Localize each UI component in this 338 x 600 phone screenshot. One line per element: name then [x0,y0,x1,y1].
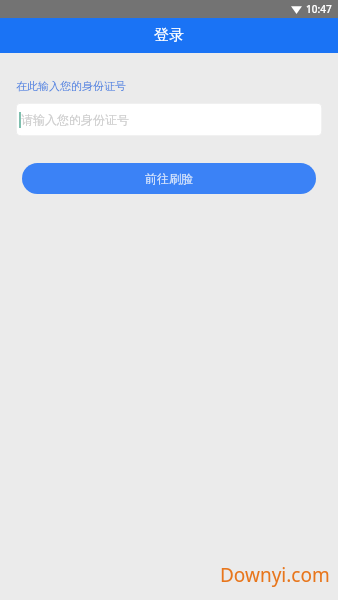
staticText: 登录 [154,26,184,45]
button[interactable]: 请输入您的身份证号 [16,103,322,136]
staticText: 前往刷脸 [145,171,193,186]
staticText: 10:47 [306,2,332,16]
other: Signal [291,5,302,14]
staticText: 在此输入您的身份证号 [16,79,126,93]
staticText: 请输入您的身份证号 [21,112,129,127]
button[interactable]: 前往刷脸 [22,163,316,194]
staticText: Downyi.com [220,562,330,588]
